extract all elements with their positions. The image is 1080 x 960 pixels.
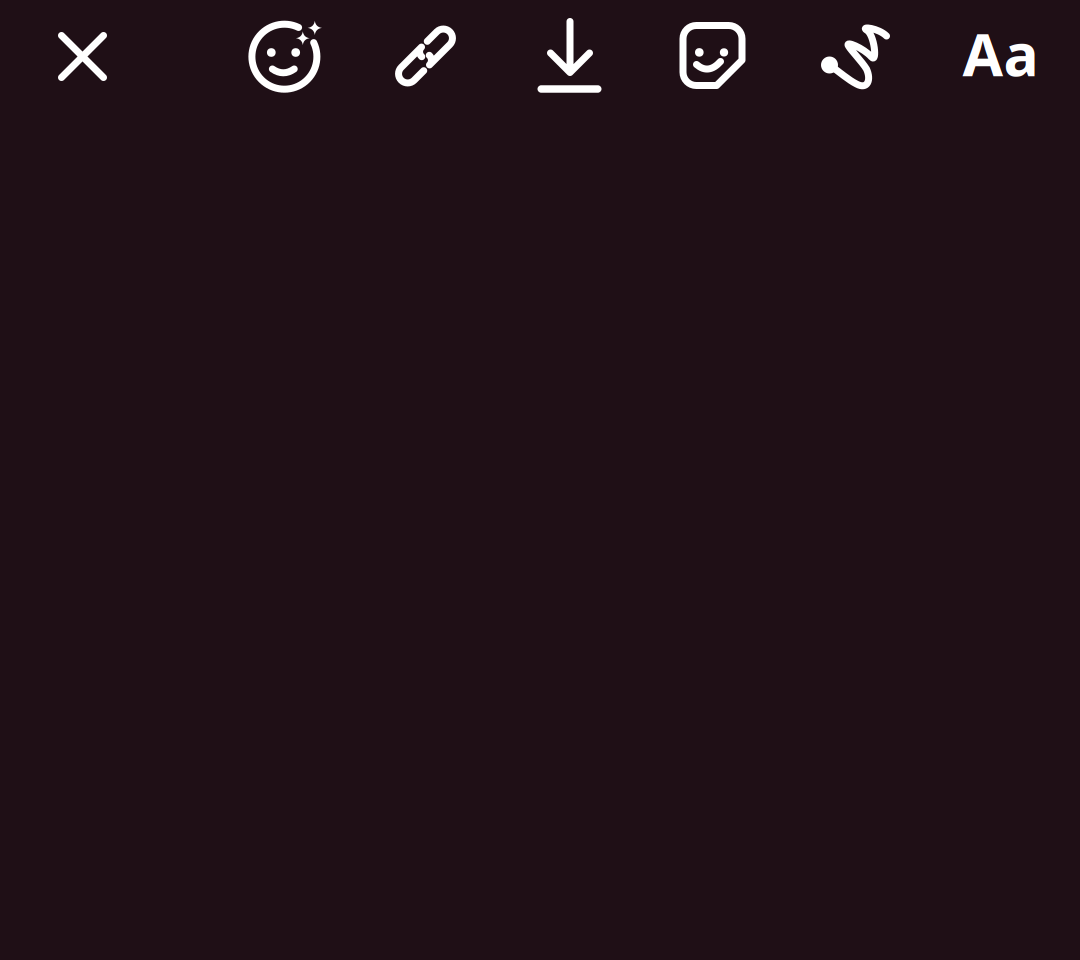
button[interactable]: Add link [361,0,489,112]
button[interactable]: Text [936,0,1064,109]
staticText: Aa [962,14,1038,92]
button[interactable]: Stickers [647,0,775,110]
button[interactable]: Effects [222,0,350,112]
button[interactable]: Close [18,0,146,112]
button[interactable]: Save [505,0,633,110]
button[interactable]: Draw [790,0,918,111]
